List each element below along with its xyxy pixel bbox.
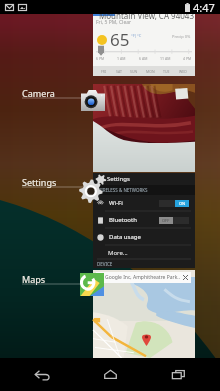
staticText: More... <box>108 249 128 257</box>
staticText: MON <box>146 69 155 74</box>
staticText: Maps <box>22 273 46 285</box>
staticText: °F|°C <box>131 33 142 38</box>
staticText: SUN <box>130 69 138 74</box>
button[interactable]: Google Inc, Amphitheatre Park.. <box>93 270 195 358</box>
staticText: OFF <box>162 218 170 223</box>
staticText: DEVICE <box>97 261 113 267</box>
staticText: 4 PM <box>183 56 192 61</box>
button[interactable]: Camera <box>81 89 105 111</box>
staticText: 4:47 <box>193 0 215 14</box>
button[interactable]: Mountain View, CA 94043 <box>93 13 195 76</box>
staticText: SAT <box>116 69 122 74</box>
staticText: 1 AM <box>117 56 126 61</box>
button[interactable] <box>93 84 195 172</box>
button[interactable]: Maps <box>22 272 88 286</box>
staticText: 11 AM <box>160 56 171 61</box>
staticText: ON <box>179 201 186 206</box>
staticText: Precip 0% <box>172 34 191 39</box>
staticText: WIRELESS & NETWORKS <box>97 187 148 193</box>
staticText: Fri, 5 PM, Clear <box>96 19 132 26</box>
button[interactable]: Recent apps <box>152 358 204 391</box>
button[interactable]: Back <box>16 358 68 391</box>
staticText: Data usage <box>109 233 141 241</box>
staticText: TUE <box>163 69 170 74</box>
staticText: WED <box>179 69 187 74</box>
staticText: 6 AM <box>139 56 148 61</box>
staticText: Settings <box>22 176 57 188</box>
staticText: Settings <box>107 175 130 183</box>
button[interactable]: Maps <box>80 273 104 296</box>
staticText: Bluetooth <box>109 216 137 224</box>
staticText: Camera <box>22 87 55 99</box>
staticText: 65 <box>110 28 130 51</box>
staticText: Mountain View, CA 94043 <box>99 10 194 21</box>
button[interactable]: Camera <box>22 86 88 100</box>
staticText: Google Inc, Amphitheatre Park.. <box>105 274 180 281</box>
button[interactable]: Settings <box>78 175 106 202</box>
button[interactable]: Home <box>84 358 136 391</box>
button[interactable]: Settings <box>22 175 88 189</box>
staticText: 6 PM <box>96 56 105 61</box>
button[interactable]: Settings <box>93 173 195 268</box>
staticText: FRI <box>101 69 107 74</box>
staticText: Wi-Fi <box>109 199 123 207</box>
